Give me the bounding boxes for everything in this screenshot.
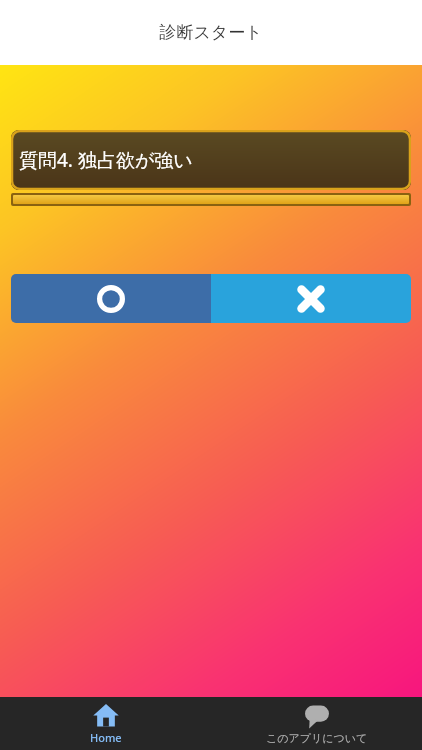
staticText: Home: [90, 730, 122, 745]
staticText: このアプリについて: [266, 731, 368, 745]
button[interactable]: いいえ: [211, 274, 411, 323]
button[interactable]: はい: [11, 274, 211, 323]
staticText: 質問4. 独占欲が強い: [19, 147, 193, 173]
staticText: 診断スタート: [159, 22, 263, 43]
button[interactable]: 質問4. 独占欲が強い: [11, 130, 411, 190]
button[interactable]: Home: [0, 697, 211, 750]
button[interactable]: このアプリについて: [211, 697, 422, 750]
